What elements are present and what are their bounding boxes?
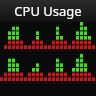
staticText: CPU Usage — [14, 2, 82, 20]
button[interactable]: CPU core 1 usage history — [0, 22, 96, 50]
button[interactable]: CPU core 2 usage history — [0, 54, 96, 82]
button[interactable]: CPU Usage — [0, 0, 96, 22]
